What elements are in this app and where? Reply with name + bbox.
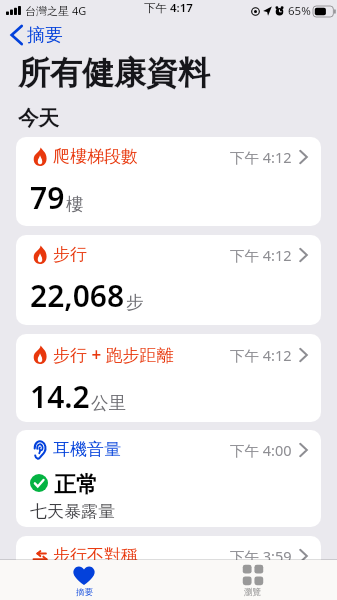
staticText: 4G [72, 3, 87, 18]
staticText: 正常 [54, 471, 98, 499]
staticText: 下午 3:59 [230, 546, 292, 566]
staticText: 步行不對稱 [53, 545, 138, 566]
staticText: % [74, 590, 89, 600]
button[interactable]: 摘要 [0, 24, 63, 46]
staticText: 下午 4:17 [144, 0, 193, 16]
button[interactable]: 步行不對稱 [16, 536, 321, 600]
staticText: 下午 4:12 [230, 345, 292, 365]
staticText: 摘要 [76, 587, 93, 598]
staticText: 爬樓梯段數 [53, 146, 138, 167]
staticText: 步行 [53, 244, 87, 265]
staticText: 步 [126, 291, 144, 313]
staticText: 耳機音量 [53, 439, 121, 460]
staticText: 14.2 [30, 376, 90, 417]
button[interactable]: 步行 + 跑步距離 [16, 334, 321, 422]
staticText: 今天 [18, 105, 59, 131]
staticText: 下午 4:12 [230, 245, 292, 265]
staticText: 22,068 [30, 275, 125, 316]
staticText: 65% [288, 3, 311, 19]
button[interactable]: 爬樓梯段數 [16, 137, 321, 226]
staticText: 七天暴露量 [30, 501, 115, 522]
button[interactable]: 摘要 [0, 560, 168, 600]
button[interactable]: 瀏覽 [168, 560, 337, 600]
staticText: 下午 4:12 [230, 147, 292, 167]
staticText: 所有健康資料 [18, 53, 210, 93]
staticText: 下午 4:00 [230, 440, 292, 460]
staticText: 公里 [91, 392, 126, 414]
staticText: 79 [30, 177, 65, 218]
staticText: 步行 + 跑步距離 [53, 343, 174, 366]
button[interactable]: 步行 [16, 235, 321, 325]
button[interactable]: 耳機音量 [16, 430, 321, 527]
staticText: 台灣之星 [25, 4, 69, 18]
staticText: 摘要 [27, 24, 63, 46]
staticText: 瀏覽 [244, 587, 261, 598]
staticText: 樓 [66, 193, 84, 215]
